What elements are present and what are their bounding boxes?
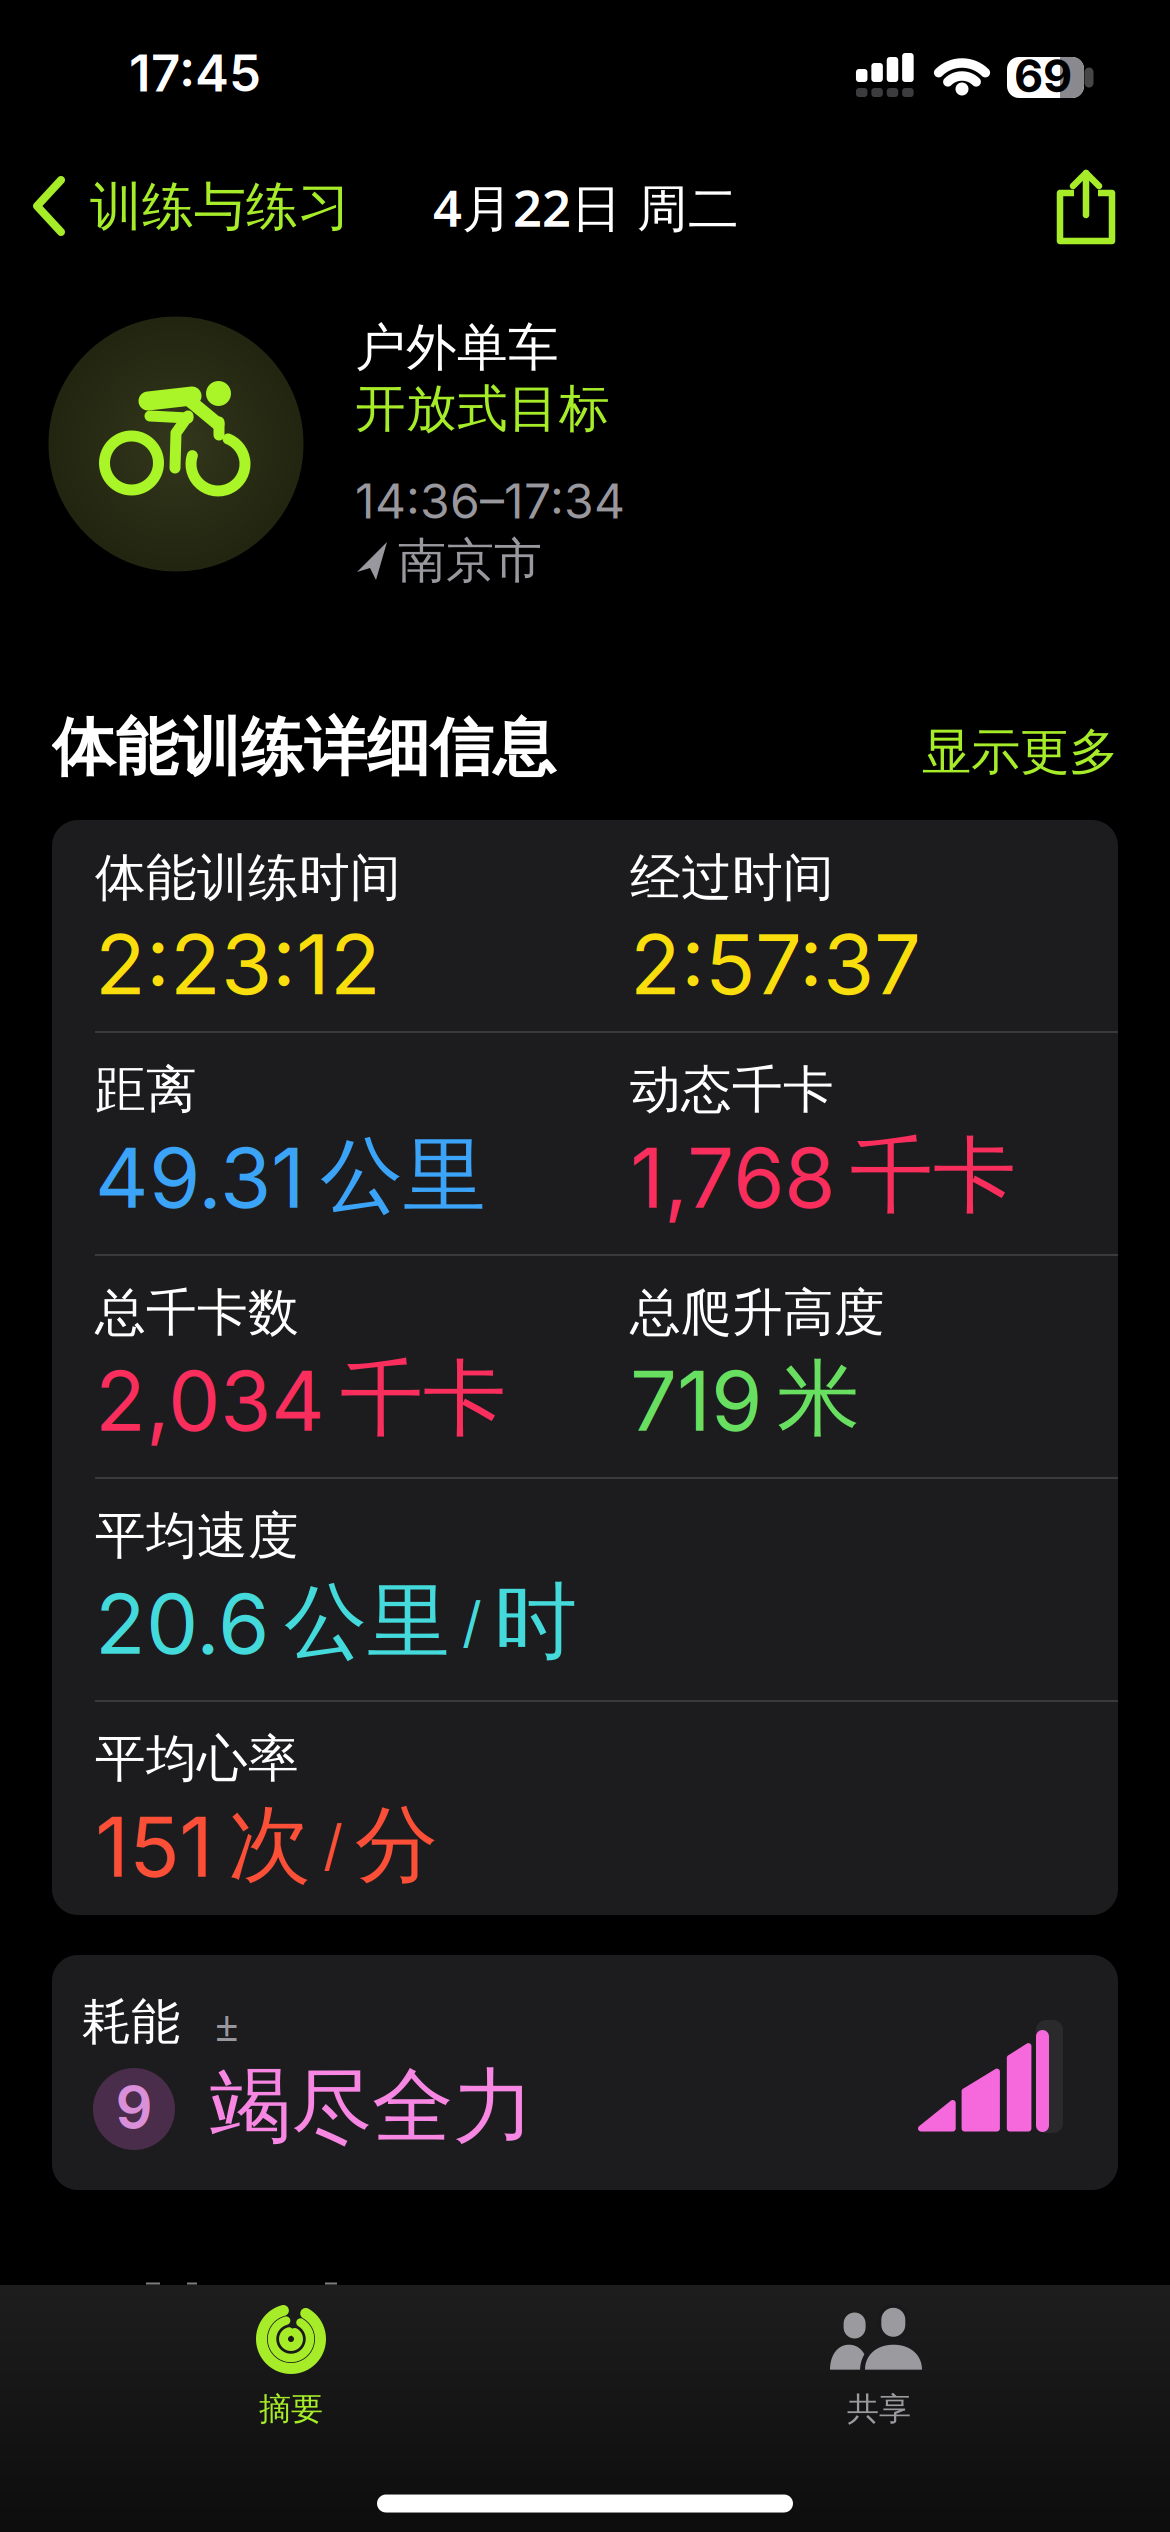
staticText: 2:57:37: [630, 914, 921, 1014]
staticText: 摘要: [259, 2389, 323, 2429]
staticText: 体能训练详细信息: [52, 709, 556, 786]
staticText: 平均心率: [95, 1728, 299, 1790]
button[interactable]: 共享: [1056, 169, 1116, 245]
staticText: ±: [215, 1998, 239, 2052]
button[interactable]: 共享: [759, 2285, 999, 2445]
staticText: 20.6 公里: [95, 1570, 450, 1674]
staticText: 距离: [95, 1059, 197, 1121]
staticText: 49.31 公里: [95, 1124, 486, 1228]
staticText: 总千卡数: [95, 1282, 299, 1344]
staticText: 平均速度: [95, 1505, 299, 1567]
staticText: 耗能: [82, 1992, 180, 2052]
staticText: 1,768 千卡: [630, 1124, 1016, 1228]
button[interactable]: 返回 训练与练习: [34, 166, 374, 246]
staticText: 竭尽全力: [210, 2057, 534, 2157]
staticText: 9: [115, 2072, 152, 2142]
staticText: 2:23:12: [95, 914, 381, 1014]
staticText: /: [462, 1589, 482, 1655]
staticText: 719 米: [630, 1347, 860, 1451]
staticText: 时: [494, 1570, 577, 1674]
button[interactable]: 显示更多: [818, 717, 1118, 787]
staticText: 开放式目标: [355, 378, 610, 440]
staticText: 户外单车: [355, 317, 559, 379]
staticText: 动态千卡: [630, 1059, 834, 1121]
staticText: 总爬升高度: [630, 1282, 885, 1344]
staticText: 南京市: [398, 531, 542, 590]
staticText: 4月22日 周二: [433, 173, 739, 241]
staticText: 69: [1014, 49, 1072, 103]
staticText: 151 次: [95, 1793, 311, 1897]
staticText: 分: [355, 1793, 438, 1897]
button[interactable]: 摘要: [171, 2285, 411, 2445]
staticText: 显示更多: [922, 722, 1118, 782]
staticText: 14:36–17:34: [355, 472, 625, 530]
staticText: 17:45: [129, 42, 261, 104]
staticText: 共享: [847, 2389, 911, 2429]
staticText: 2,034 千卡: [95, 1347, 506, 1451]
staticText: 训练与练习: [90, 175, 350, 239]
staticText: 经过时间: [630, 847, 834, 909]
staticText: 体能训练时间: [95, 847, 401, 909]
staticText: /: [323, 1812, 343, 1878]
